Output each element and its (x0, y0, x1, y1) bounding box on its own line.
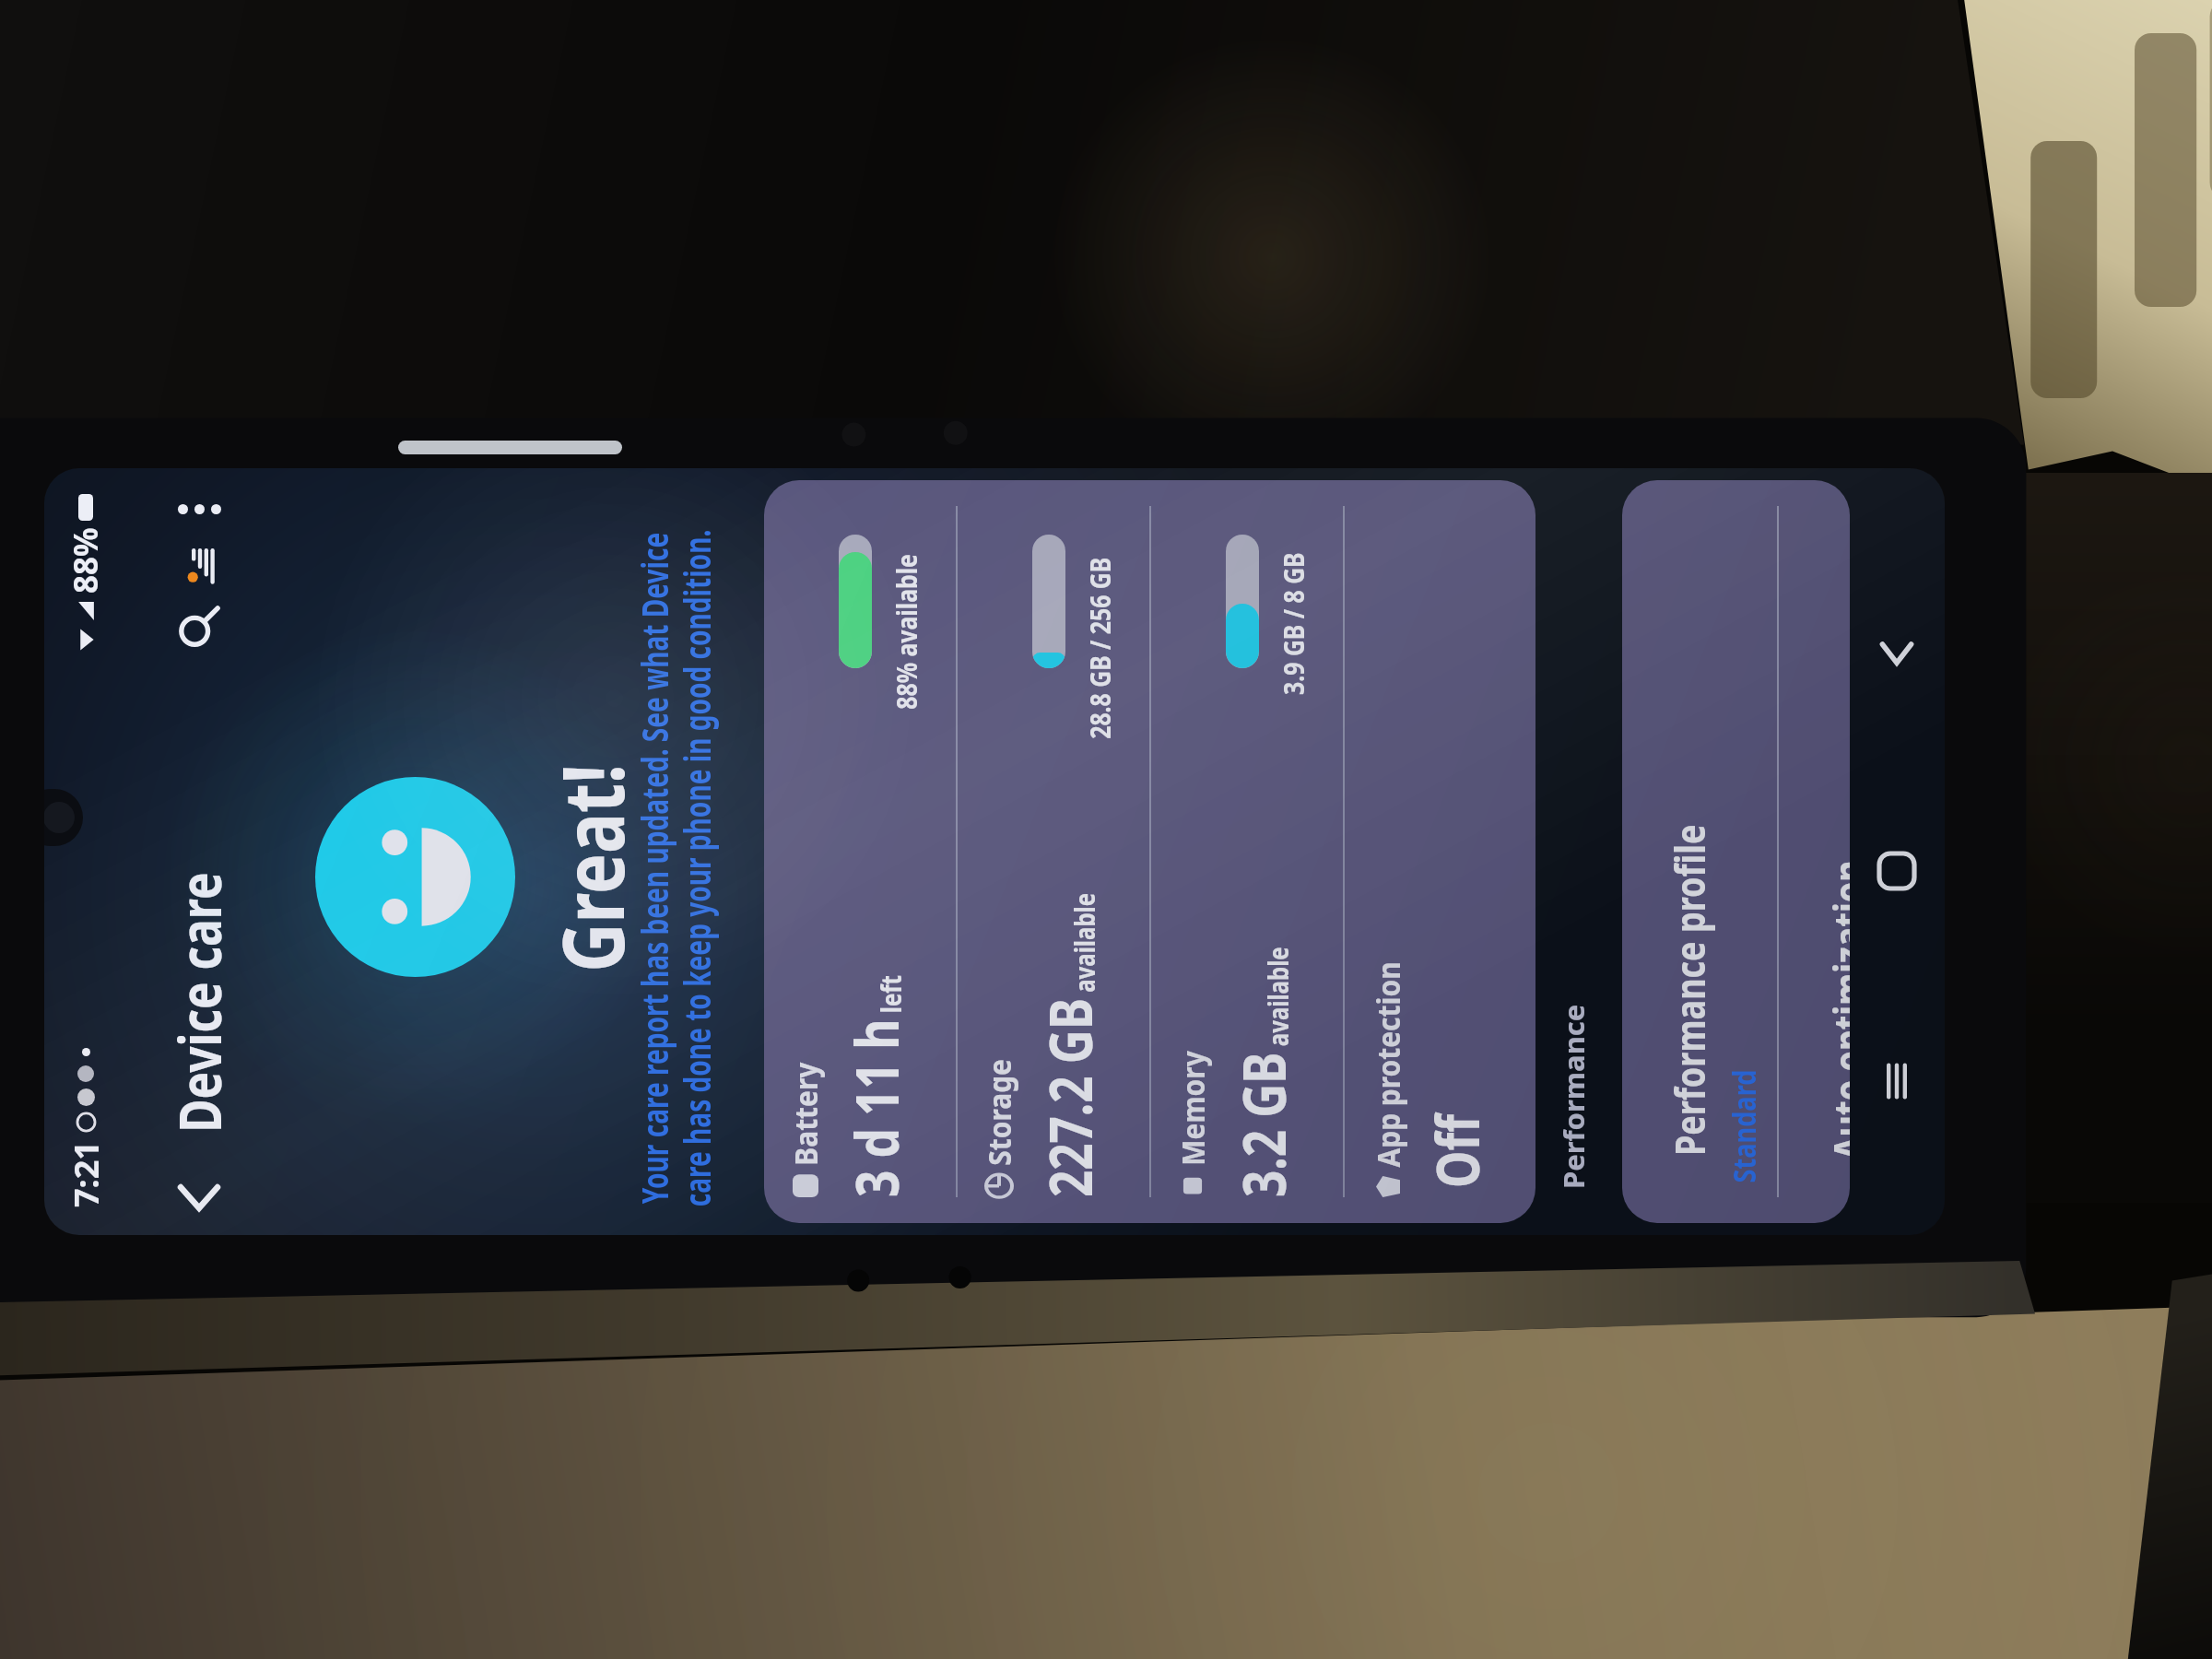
staticText: available (1065, 893, 1103, 998)
staticText: available (1259, 947, 1297, 1052)
button[interactable]: Recents (1862, 1046, 1932, 1116)
button[interactable]: App protection (1345, 506, 1535, 1197)
staticText: Off (1417, 1113, 1497, 1188)
staticText: 227.2 GB (1030, 998, 1110, 1197)
staticText: left (872, 975, 910, 1019)
button[interactable]: More options (171, 481, 228, 538)
staticText: Great! (534, 561, 649, 1175)
button[interactable]: Auto optimization (1779, 480, 1850, 1223)
staticText: Battery (784, 1062, 827, 1166)
button[interactable]: Battery (764, 506, 956, 1197)
button[interactable]: Back (1862, 619, 1932, 689)
staticText: Memory (1171, 1050, 1214, 1166)
button[interactable]: Search (168, 595, 230, 658)
staticText: Performance (1554, 1004, 1593, 1189)
button[interactable]: Storage (958, 506, 1149, 1197)
staticText: 88% (64, 527, 108, 594)
staticText: Standard (1723, 1070, 1765, 1183)
staticText: 7:21 (64, 1141, 109, 1207)
button[interactable]: Navigate up (168, 1167, 230, 1230)
staticText: Device care (160, 872, 238, 1132)
staticText: App protection (1367, 961, 1409, 1167)
staticText: 88% available (887, 554, 925, 710)
button[interactable]: Performance profile (1622, 480, 1777, 1223)
staticText: 28.8 GB / 256 GB (1080, 557, 1119, 739)
staticText: 3.2 GB (1223, 1052, 1303, 1197)
staticText: Auto optimization (1819, 860, 1850, 1160)
button[interactable]: Memory (1151, 506, 1343, 1197)
button[interactable]: Performance booster (171, 538, 228, 595)
staticText: 3 d 11 h (836, 1019, 916, 1197)
staticText: Your care report has been updated. See w… (629, 470, 722, 1235)
button[interactable]: Home (1862, 836, 1932, 906)
staticText: Performance profile (1661, 824, 1717, 1156)
staticText: 3.9 GB / 8 GB (1274, 552, 1312, 695)
staticText: Storage (978, 1059, 1020, 1166)
